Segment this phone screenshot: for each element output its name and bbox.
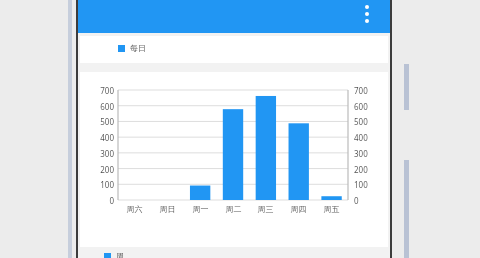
button[interactable]: 每日 bbox=[80, 36, 388, 63]
staticText: 0 bbox=[354, 195, 380, 206]
staticText: 500 bbox=[354, 116, 380, 127]
staticText: 100 bbox=[354, 179, 380, 190]
staticText: 200 bbox=[354, 164, 380, 175]
staticText: 0 bbox=[88, 195, 114, 206]
staticText: 700 bbox=[354, 85, 380, 96]
staticText: 周 bbox=[116, 251, 124, 258]
button[interactable]: 0 bbox=[80, 72, 388, 247]
staticText: 周三 bbox=[249, 204, 282, 214]
staticText: 600 bbox=[354, 101, 380, 112]
staticText: 300 bbox=[88, 148, 114, 159]
staticText: 300 bbox=[354, 148, 380, 159]
staticText: 周日 bbox=[151, 204, 184, 214]
staticText: 周一 bbox=[184, 204, 217, 214]
staticText: 周二 bbox=[217, 204, 250, 214]
staticText: 周五 bbox=[315, 204, 348, 214]
staticText: 400 bbox=[354, 132, 380, 143]
button[interactable]: 周 bbox=[104, 251, 124, 258]
staticText: 700 bbox=[88, 85, 114, 96]
staticText: 每日 bbox=[130, 43, 146, 53]
button[interactable]: More options bbox=[354, 1, 380, 27]
staticText: 200 bbox=[88, 164, 114, 175]
staticText: 周六 bbox=[118, 204, 151, 214]
staticText: 500 bbox=[88, 116, 114, 127]
staticText: 100 bbox=[88, 179, 114, 190]
staticText: 周四 bbox=[282, 204, 315, 214]
staticText: 400 bbox=[88, 132, 114, 143]
staticText: 600 bbox=[88, 101, 114, 112]
